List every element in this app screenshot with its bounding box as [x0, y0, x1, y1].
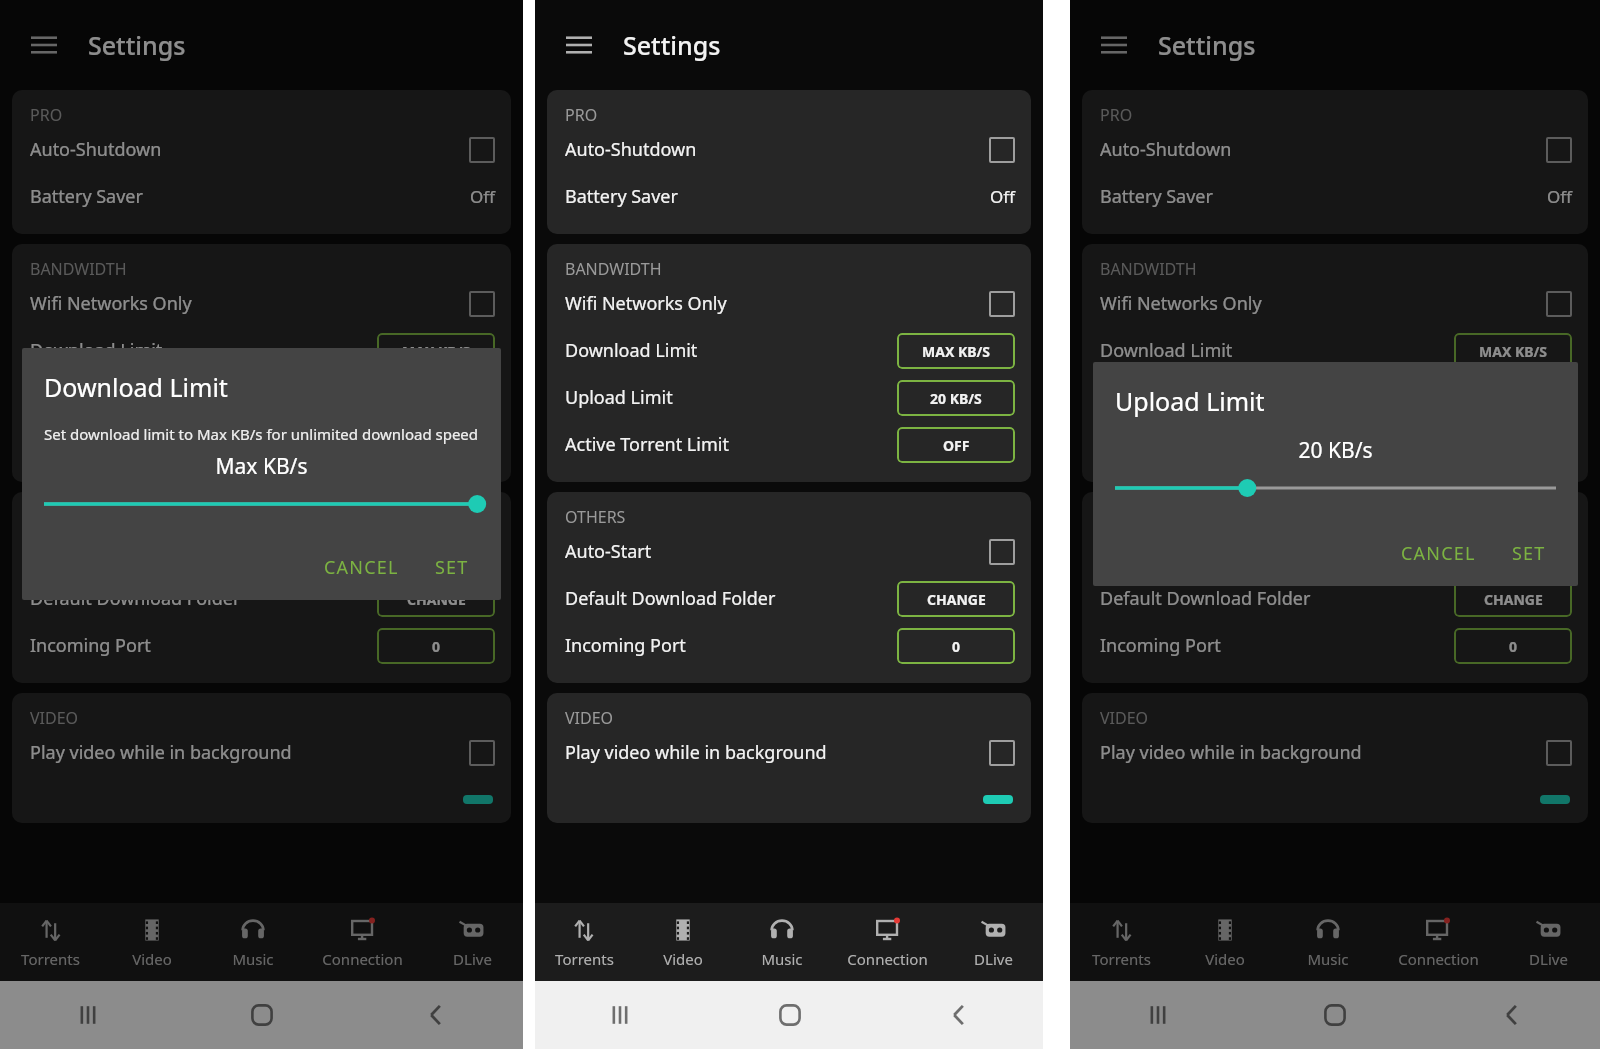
staticText: 20 KB/s: [1115, 436, 1556, 465]
staticText: Auto-Start: [565, 539, 652, 564]
button[interactable]: CHANGE: [897, 581, 1015, 617]
button[interactable]: Connection: [1379, 903, 1497, 981]
button[interactable]: Toggle checkbox: [989, 291, 1015, 317]
button[interactable]: Recent apps: [535, 981, 705, 1049]
button[interactable]: Limit slider: [44, 493, 479, 515]
button[interactable]: DLive: [1497, 903, 1600, 981]
button[interactable]: OFF: [377, 427, 495, 463]
button[interactable]: 0: [1454, 628, 1572, 664]
button[interactable]: Battery Saver: [30, 173, 495, 220]
button[interactable]: CANCEL: [314, 549, 409, 586]
button[interactable]: DLive: [421, 903, 523, 981]
button[interactable]: Video: [101, 903, 202, 981]
button[interactable]: Back: [1423, 981, 1600, 1049]
button[interactable]: Active Torrent Limit: [565, 421, 1015, 468]
button[interactable]: Open navigation menu: [557, 23, 601, 67]
button[interactable]: CHANGE: [377, 581, 495, 617]
button[interactable]: MAX KB/S: [1454, 333, 1572, 369]
button[interactable]: Toggle checkbox: [1546, 137, 1572, 163]
button[interactable]: Toggle checkbox: [1546, 291, 1572, 317]
button[interactable]: Default Download Folder: [30, 575, 495, 622]
button[interactable]: Back: [349, 981, 523, 1049]
button[interactable]: Torrents: [0, 903, 101, 981]
button[interactable]: 0: [377, 628, 495, 664]
button[interactable]: Auto-Start: [1100, 528, 1572, 575]
button[interactable]: [565, 776, 1015, 823]
button[interactable]: Upload Limit: [1100, 374, 1572, 421]
button[interactable]: Auto-Shutdown: [30, 126, 495, 173]
button[interactable]: CHANGE: [1454, 581, 1572, 617]
staticText: Music: [232, 949, 274, 969]
button[interactable]: Connection: [831, 903, 944, 981]
button[interactable]: Limit slider: [1115, 477, 1556, 499]
button[interactable]: Download Limit: [1100, 327, 1572, 374]
button[interactable]: Toggle checkbox: [989, 740, 1015, 766]
button[interactable]: Toggle checkbox: [989, 137, 1015, 163]
button[interactable]: Incoming Port: [1100, 622, 1572, 669]
button[interactable]: Music: [202, 903, 304, 981]
button[interactable]: Active Torrent Limit: [1100, 421, 1572, 468]
button[interactable]: 20 KB/S: [897, 380, 1015, 416]
button[interactable]: Connection: [304, 903, 421, 981]
button[interactable]: DLive: [944, 903, 1043, 981]
button[interactable]: Wifi Networks Only: [30, 280, 495, 327]
button[interactable]: CANCEL: [1391, 535, 1486, 572]
button[interactable]: Toggle checkbox: [989, 539, 1015, 565]
button[interactable]: Default Download Folder: [1100, 575, 1572, 622]
button[interactable]: Incoming Port: [565, 622, 1015, 669]
button[interactable]: Torrents: [535, 903, 633, 981]
button[interactable]: Battery Saver: [565, 173, 1015, 220]
button[interactable]: MAX KB/S: [377, 333, 495, 369]
button[interactable]: Play video while in background: [30, 729, 495, 776]
button[interactable]: Default Download Folder: [565, 575, 1015, 622]
button[interactable]: Play video while in background: [565, 729, 1015, 776]
button[interactable]: Music: [1276, 903, 1379, 981]
button[interactable]: MAX KB/S: [897, 333, 1015, 369]
button[interactable]: Wifi Networks Only: [1100, 280, 1572, 327]
button[interactable]: Open navigation menu: [22, 23, 66, 67]
button[interactable]: Video: [633, 903, 732, 981]
button[interactable]: SET: [1502, 535, 1556, 572]
button[interactable]: Download Limit: [565, 327, 1015, 374]
button[interactable]: Auto-Shutdown: [565, 126, 1015, 173]
button[interactable]: Back: [874, 981, 1043, 1049]
button[interactable]: Home: [1246, 981, 1423, 1049]
button[interactable]: SET: [425, 549, 479, 586]
button[interactable]: Toggle checkbox: [1546, 740, 1572, 766]
button[interactable]: Open navigation menu: [1092, 23, 1136, 67]
button[interactable]: Download Limit: [30, 327, 495, 374]
button[interactable]: Wifi Networks Only: [565, 280, 1015, 327]
button[interactable]: Home: [705, 981, 874, 1049]
button[interactable]: [30, 776, 495, 823]
staticText: Incoming Port: [30, 633, 151, 658]
button[interactable]: Video: [1173, 903, 1276, 981]
staticText: Settings: [1158, 28, 1256, 62]
button[interactable]: Incoming Port: [30, 622, 495, 669]
button[interactable]: OFF: [897, 427, 1015, 463]
button[interactable]: Auto-Start: [565, 528, 1015, 575]
button[interactable]: 0: [897, 628, 1015, 664]
button[interactable]: Auto-Start: [30, 528, 495, 575]
button[interactable]: Battery Saver: [1100, 173, 1572, 220]
button[interactable]: Play video while in background: [1100, 729, 1572, 776]
button[interactable]: Toggle checkbox: [469, 740, 495, 766]
button[interactable]: Auto-Shutdown: [1100, 126, 1572, 173]
button[interactable]: Toggle checkbox: [469, 137, 495, 163]
button[interactable]: Music: [732, 903, 831, 981]
staticText: OFF: [943, 436, 970, 455]
button[interactable]: Torrents: [1070, 903, 1173, 981]
button[interactable]: Recent apps: [0, 981, 175, 1049]
staticText: MAX KB/S: [1479, 342, 1548, 361]
button[interactable]: Upload Limit: [565, 374, 1015, 421]
button[interactable]: Toggle checkbox: [469, 291, 495, 317]
button[interactable]: Upload Limit: [30, 374, 495, 421]
button[interactable]: Active Torrent Limit: [30, 421, 495, 468]
button[interactable]: Recent apps: [1070, 981, 1246, 1049]
button[interactable]: Home: [175, 981, 349, 1049]
button[interactable]: [1100, 776, 1572, 823]
